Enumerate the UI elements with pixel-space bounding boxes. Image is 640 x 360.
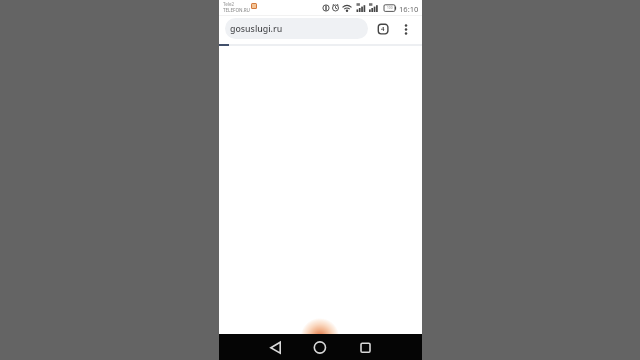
button[interactable]: [399, 21, 413, 39]
staticText: TELEFON.RU: [223, 7, 250, 13]
button[interactable]: [265, 336, 286, 357]
staticText: Tele2: [223, 1, 234, 7]
staticText: 16:10: [399, 4, 419, 14]
staticText: 100: [387, 6, 393, 10]
button[interactable]: gosuslugi.ru: [225, 18, 368, 39]
button[interactable]: [355, 336, 376, 357]
staticText: gosuslugi.ru: [230, 23, 283, 35]
button[interactable]: 4: [374, 23, 392, 39]
button[interactable]: [309, 336, 330, 357]
staticText: 4: [381, 25, 385, 33]
